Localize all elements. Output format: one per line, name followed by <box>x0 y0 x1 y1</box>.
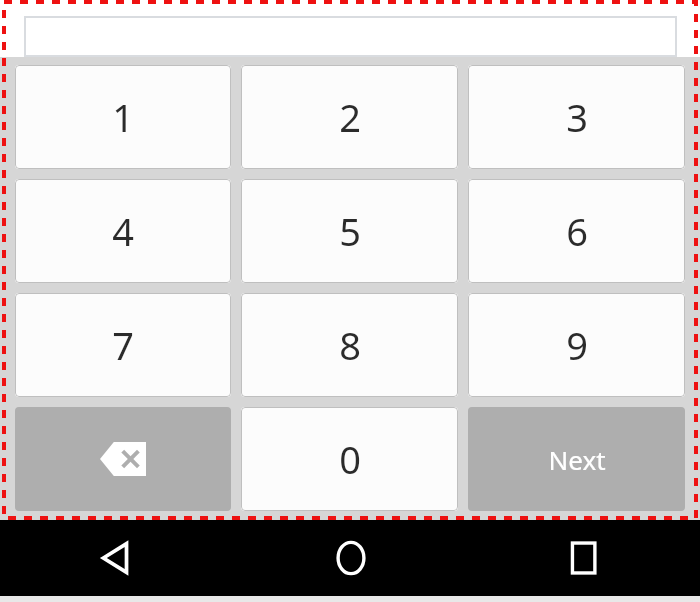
button[interactable]: 9 <box>468 293 685 397</box>
staticText: 6 <box>566 205 588 257</box>
button[interactable]: Backspace <box>15 407 231 511</box>
staticText: 7 <box>112 319 134 371</box>
staticText: 9 <box>566 319 588 371</box>
button[interactable]: Back <box>0 520 234 596</box>
button[interactable]: 3 <box>468 65 685 169</box>
button[interactable]: 6 <box>468 179 685 283</box>
button[interactable]: 5 <box>241 179 458 283</box>
staticText: 5 <box>339 205 361 257</box>
staticText: 1 <box>112 91 134 143</box>
button[interactable]: 1 <box>15 65 231 169</box>
staticText: 2 <box>339 91 361 143</box>
button[interactable]: Recent apps <box>467 520 700 596</box>
button[interactable]: Home <box>234 520 467 596</box>
staticText: 3 <box>566 91 588 143</box>
staticText: Next <box>548 442 606 477</box>
button[interactable] <box>24 16 677 57</box>
button[interactable]: 7 <box>15 293 231 397</box>
button[interactable]: 2 <box>241 65 458 169</box>
staticText: 4 <box>112 205 134 257</box>
button[interactable]: Next <box>468 407 685 511</box>
button[interactable]: 0 <box>241 407 458 511</box>
button[interactable]: 4 <box>15 179 231 283</box>
button[interactable]: 8 <box>241 293 458 397</box>
staticText: 0 <box>339 433 361 485</box>
staticText: 8 <box>339 319 361 371</box>
